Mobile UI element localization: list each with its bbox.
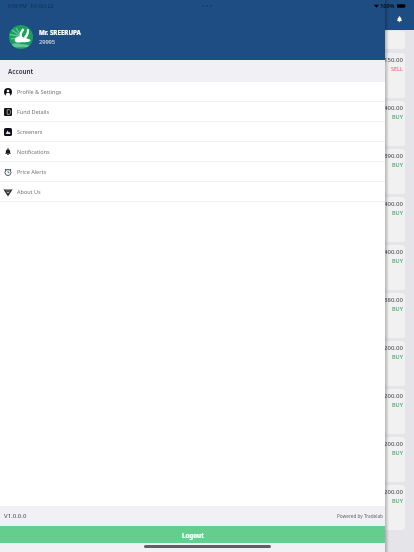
button[interactable]: Fund Details xyxy=(0,102,385,121)
staticText: About Us xyxy=(17,188,41,195)
staticText: 1,390.00 xyxy=(379,152,403,160)
staticText: SELL xyxy=(391,65,403,72)
button[interactable]: Profile & Settings xyxy=(0,82,385,101)
staticText: 1,200.00 xyxy=(379,488,403,496)
staticText: 2,400.00 xyxy=(379,104,403,112)
staticText: 1,150.00 xyxy=(379,56,403,64)
button[interactable]: 1,400.00 xyxy=(6,245,405,290)
staticText: Fund Details xyxy=(17,108,50,115)
button[interactable]: 2,400.00 xyxy=(6,101,405,146)
staticText: 1,200.00 xyxy=(379,344,403,352)
staticText: Mr. SREERUPA xyxy=(39,28,81,36)
button[interactable] xyxy=(6,31,405,49)
staticText: BUY xyxy=(392,449,403,456)
staticText: 2,400.00 xyxy=(379,200,403,208)
staticText: BUY xyxy=(392,209,403,216)
button[interactable]: Logout xyxy=(0,526,385,543)
button[interactable]: 1,390.00 xyxy=(6,149,405,194)
button[interactable]: Screeners xyxy=(0,122,385,141)
staticText: 1,400.00 xyxy=(379,248,403,256)
button[interactable]: 1,150.00 xyxy=(6,53,405,98)
staticText: Powered by Tradelab xyxy=(337,513,383,519)
button[interactable]: 1,200.00 xyxy=(6,389,405,434)
staticText: 1,200.00 xyxy=(379,392,403,400)
staticText: V1.0.0.0 xyxy=(4,512,27,520)
button[interactable]: Price Alerts xyxy=(0,162,385,181)
button[interactable]: 1,380.00 xyxy=(6,293,405,338)
staticText: 29995 xyxy=(39,38,55,46)
button[interactable]: 1,200.00 xyxy=(6,341,405,386)
button[interactable]: About Us xyxy=(0,182,385,201)
staticText: Logout xyxy=(182,531,204,539)
staticText: BUY xyxy=(392,305,403,312)
button[interactable]: 1,200.00 xyxy=(6,437,405,482)
staticText: BUY xyxy=(392,401,403,408)
button[interactable]: Notifications xyxy=(0,142,385,161)
staticText: 6:04 PM Fri Oct 22 xyxy=(8,3,54,10)
staticText: BUY xyxy=(392,257,403,264)
staticText: Screeners xyxy=(17,128,43,135)
staticText: 1,380.00 xyxy=(379,296,403,304)
staticText: Notifications xyxy=(17,148,50,155)
button[interactable]: Notifications xyxy=(392,12,406,26)
staticText: BUY xyxy=(392,161,403,168)
staticText: BUY xyxy=(392,497,403,504)
staticText: Price Alerts xyxy=(17,168,47,175)
staticText: BUY xyxy=(392,353,403,360)
staticText: 100% xyxy=(380,2,395,10)
staticText: Profile & Settings xyxy=(17,88,62,95)
staticText: Account xyxy=(8,67,34,75)
staticText: 1,200.00 xyxy=(379,440,403,448)
button[interactable]: 2,400.00 xyxy=(6,197,405,242)
staticText: BUY xyxy=(392,113,403,120)
button[interactable]: 1,200.00 xyxy=(6,485,405,530)
